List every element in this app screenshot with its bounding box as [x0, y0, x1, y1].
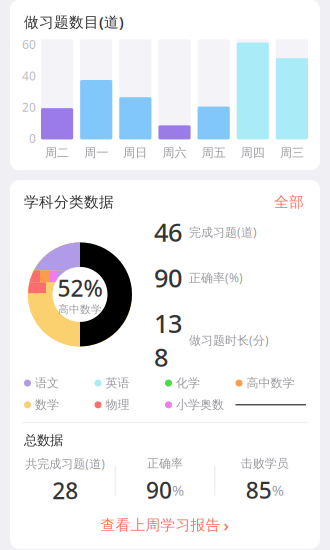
- staticText: 28: [52, 475, 78, 506]
- staticText: 击败学员: [241, 456, 289, 471]
- staticText: %: [272, 480, 284, 500]
- staticText: 90: [154, 261, 182, 294]
- staticText: 周三: [280, 145, 304, 160]
- staticText: 138: [154, 306, 182, 374]
- staticText: 查看上周学习报告: [100, 516, 220, 534]
- staticText: 60: [22, 36, 36, 52]
- staticText: 化学: [176, 376, 200, 390]
- staticText: 85: [246, 475, 272, 505]
- staticText: 周一: [84, 145, 108, 160]
- staticText: %: [172, 480, 184, 500]
- staticText: 做习题时长(分): [189, 332, 269, 348]
- staticText: 正确率: [147, 456, 183, 471]
- staticText: 正确率(%): [189, 270, 243, 285]
- staticText: 周二: [45, 145, 69, 160]
- staticText: 周五: [202, 145, 226, 160]
- staticText: 数学: [35, 397, 59, 412]
- staticText: 全部: [274, 193, 304, 211]
- staticText: 小学奥数: [176, 397, 224, 412]
- staticText: 20: [22, 99, 36, 115]
- staticText: 周日: [123, 145, 147, 160]
- staticText: 周六: [162, 145, 186, 160]
- staticText: 40: [22, 68, 36, 84]
- staticText: 语文: [35, 376, 59, 390]
- staticText: 共完成习题(道): [25, 456, 105, 471]
- button[interactable]: 全部: [272, 191, 306, 213]
- staticText: 总数据: [24, 432, 63, 449]
- staticText: 46: [154, 215, 182, 249]
- button[interactable]: 查看上周学习报告: [10, 506, 320, 545]
- staticText: 90: [146, 475, 172, 505]
- staticText: ›: [223, 515, 229, 536]
- staticText: 0: [29, 130, 36, 146]
- staticText: 高中数学: [246, 376, 294, 390]
- staticText: 52%: [57, 273, 102, 303]
- staticText: 高中数学: [58, 303, 102, 316]
- staticText: 英语: [105, 376, 129, 390]
- staticText: 周四: [241, 145, 265, 160]
- staticText: 完成习题(道): [189, 224, 257, 240]
- staticText: 学科分类数据: [24, 193, 114, 211]
- staticText: 物理: [105, 397, 129, 412]
- staticText: 做习题数目(道): [24, 12, 124, 31]
